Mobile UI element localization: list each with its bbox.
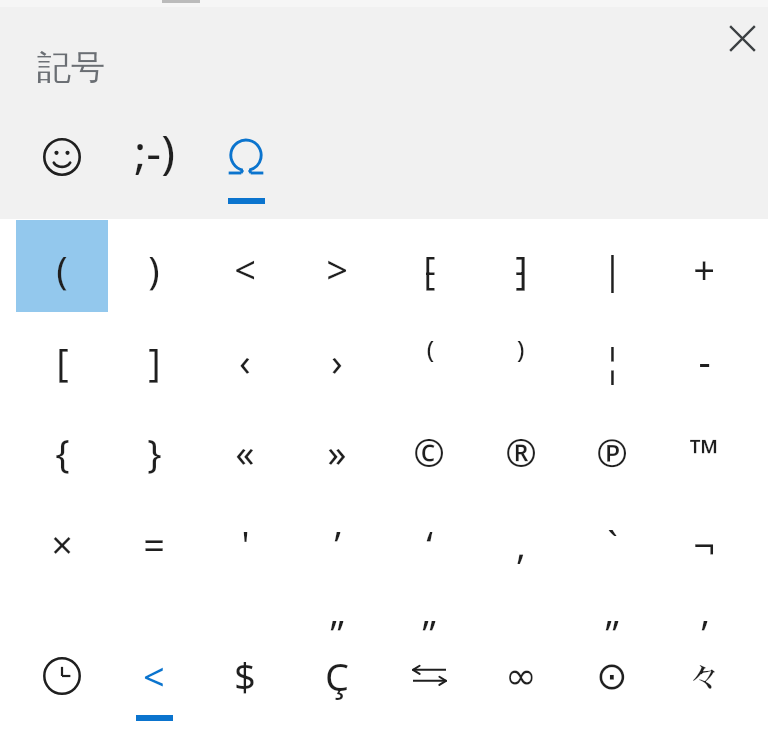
staticText: ⁅ [423,243,436,295]
staticText: ¬ [693,518,715,570]
button[interactable] [475,587,567,679]
staticText: | [602,243,623,295]
button[interactable]: > [291,220,383,312]
button[interactable]: = [108,495,200,587]
staticText: × [51,518,73,570]
staticText: ( [56,243,68,295]
staticText: $ [234,650,256,702]
button[interactable]: ’ [658,587,750,679]
button[interactable]: × [16,495,108,587]
button[interactable]: ® [475,403,567,495]
staticText: ) [148,243,160,295]
staticText: ` [607,518,618,570]
button[interactable]: › [291,312,383,404]
button[interactable]: ” [383,587,475,679]
button[interactable]: ¬ [658,495,750,587]
staticText: ℗ [596,426,628,478]
staticText: ‘ [426,518,433,570]
staticText: ] [148,335,161,387]
button[interactable]: { [16,403,108,495]
staticText: < [143,650,165,702]
button[interactable]: | [566,220,658,312]
staticText: < [234,243,256,295]
staticText: Ç [325,650,350,702]
button[interactable]: Ç [291,631,383,737]
button[interactable]: ™ [658,403,750,495]
button[interactable]: - [658,312,750,404]
staticText: { [55,426,70,478]
button[interactable]: ‚ [475,495,567,587]
staticText: › [331,335,343,387]
button[interactable]: ⁅ [383,220,475,312]
button[interactable]: ∞ [475,631,567,737]
button[interactable]: ;-) [108,110,200,219]
button[interactable]: } [108,403,200,495]
button[interactable]: ] [108,312,200,404]
staticText: > [326,243,348,295]
staticText: ” [605,607,619,659]
staticText: - [698,335,711,387]
staticText: ’ [701,607,708,659]
button[interactable]: © [383,403,475,495]
staticText: ⁽ [425,335,434,387]
button[interactable] [200,110,292,219]
button[interactable]: ( [16,220,108,312]
button[interactable]: ’ [291,495,383,587]
staticText: © [413,426,445,478]
button[interactable]: $ [199,631,291,737]
staticText: ∞ [505,654,537,698]
staticText: ‹ [239,335,251,387]
button[interactable]: » [291,403,383,495]
staticText: ;-) [134,120,175,183]
staticText: } [147,426,162,478]
staticText: ™ [689,426,719,478]
staticText: 記号 [37,46,105,89]
button[interactable]: ” [291,587,383,679]
staticText: = [143,518,165,570]
staticText: ” [422,607,436,659]
staticText: ‚ [516,518,526,570]
staticText: ⁆ [515,243,528,295]
staticText: [ [56,335,69,387]
staticText: » [327,426,347,478]
button[interactable]: ` [566,495,658,587]
button[interactable]: + [658,220,750,312]
staticText: ’ [334,518,341,570]
button[interactable]: ⊙ [566,631,658,737]
button[interactable] [16,587,108,679]
staticText: + [693,243,715,295]
button[interactable]: « [199,403,291,495]
staticText: ⁾ [517,335,526,387]
button[interactable] [16,631,108,737]
button[interactable]: Close [714,10,768,66]
button[interactable]: < [108,631,200,737]
button[interactable]: < [199,220,291,312]
staticText: ⊙ [596,654,628,698]
button[interactable] [108,587,200,679]
button[interactable]: ‹ [199,312,291,404]
staticText: ® [505,426,537,478]
button[interactable] [383,631,475,737]
button[interactable]: ' [199,495,291,587]
button[interactable]: ‘ [383,495,475,587]
staticText: 々 [685,652,723,700]
button[interactable] [199,587,291,679]
button[interactable]: 々 [658,631,750,737]
button[interactable]: ¦ [566,312,658,404]
button[interactable]: ⁾ [475,312,567,404]
button[interactable]: [ [16,312,108,404]
staticText: ” [330,607,344,659]
staticText: ¦ [602,335,623,387]
button[interactable]: ) [108,220,200,312]
button[interactable]: ℗ [566,403,658,495]
staticText: « [235,426,255,478]
button[interactable]: ⁽ [383,312,475,404]
button[interactable]: ” [566,587,658,679]
staticText: ' [241,518,250,570]
button[interactable] [16,110,108,219]
button[interactable]: ⁆ [475,220,567,312]
